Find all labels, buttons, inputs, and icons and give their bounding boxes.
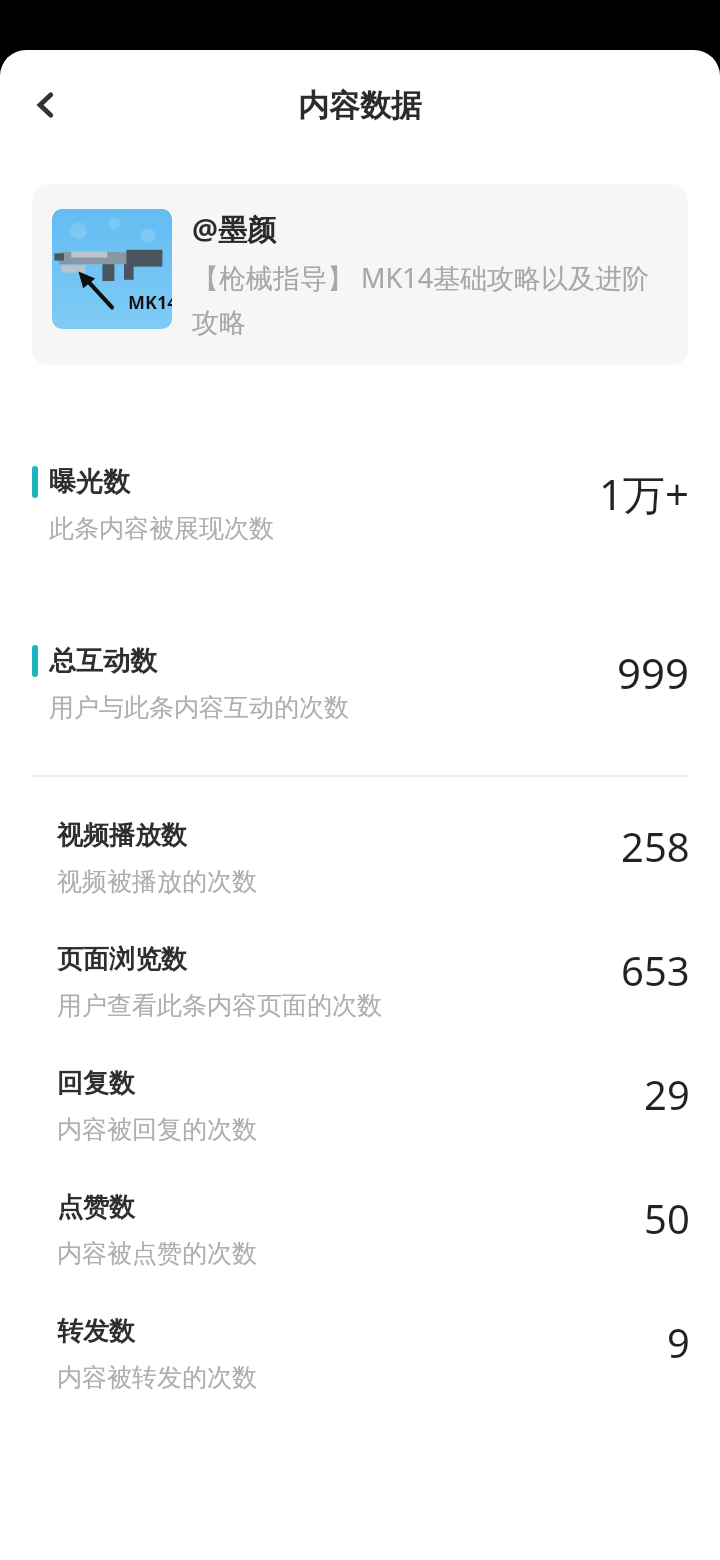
button[interactable]: 回复数 [0,1067,720,1145]
staticText: 点赞数 [57,1191,135,1224]
staticText: 258 [621,819,690,873]
staticText: @墨颜 [192,209,277,249]
staticText: 视频被播放的次数 [57,866,257,897]
staticText: 回复数 [57,1067,135,1100]
button[interactable]: 点赞数 [0,1191,720,1269]
staticText: 总互动数 [49,644,157,678]
staticText: 曝光数 [49,465,130,499]
staticText: 50 [644,1191,690,1245]
staticText: 1万+ [599,465,690,522]
staticText: 内容数据 [298,86,422,125]
staticText: 29 [644,1067,690,1121]
button[interactable]: 总互动数 [0,644,720,723]
staticText: 内容被回复的次数 [57,1114,257,1145]
staticText: MK14 [128,290,172,315]
staticText: 内容被转发的次数 [57,1362,257,1393]
staticText: 653 [621,943,690,997]
staticText: 内容被点赞的次数 [57,1238,257,1269]
staticText: 转发数 [57,1315,135,1348]
button[interactable]: 页面浏览数 [0,943,720,1021]
staticText: 用户与此条内容互动的次数 [49,692,349,723]
staticText: 视频播放数 [57,819,187,852]
staticText: 999 [617,644,690,701]
button[interactable]: Back [18,77,74,133]
button[interactable]: 转发数 [0,1315,720,1393]
staticText: 此条内容被展现次数 [49,513,274,544]
button[interactable]: 曝光数 [0,465,720,544]
staticText: 用户查看此条内容页面的次数 [57,990,382,1021]
staticText: 【枪械指导】 MK14基础攻略以及进阶攻略 [192,259,670,340]
staticText: 页面浏览数 [57,943,187,976]
button[interactable]: MK14 [32,184,688,365]
button[interactable]: 视频播放数 [0,819,720,897]
staticText: 9 [667,1315,690,1369]
